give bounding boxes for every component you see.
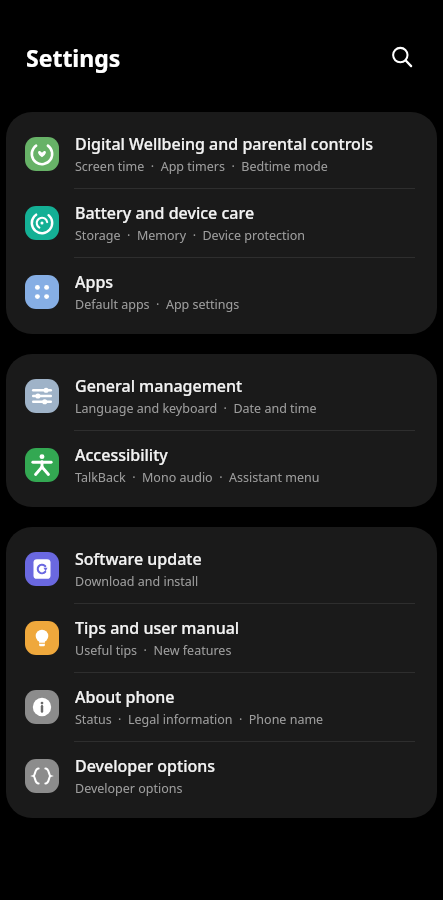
staticText: Software update	[75, 548, 202, 570]
staticText: Default apps · App settings	[75, 296, 240, 313]
button[interactable]: General management	[6, 362, 437, 430]
staticText: General management	[75, 375, 243, 397]
staticText: Digital Wellbeing and parental controls	[75, 133, 373, 155]
staticText: Tips and user manual	[75, 617, 240, 639]
button[interactable]: Search	[380, 35, 424, 79]
button[interactable]: Battery and device care	[6, 189, 437, 257]
staticText: Status · Legal information · Phone name	[75, 711, 324, 728]
staticText: Apps	[75, 271, 114, 293]
staticText: Screen time · App timers · Bedtime mode	[75, 158, 328, 175]
staticText: About phone	[75, 686, 175, 708]
button[interactable]: About phone	[6, 673, 437, 741]
button[interactable]: Apps	[6, 258, 437, 326]
staticText: Accessibility	[75, 444, 168, 466]
button[interactable]: Tips and user manual	[6, 604, 437, 672]
staticText: Useful tips · New features	[75, 642, 232, 659]
staticText: TalkBack · Mono audio · Assistant menu	[75, 469, 320, 486]
staticText: Settings	[26, 42, 121, 73]
staticText: Storage · Memory · Device protection	[75, 227, 306, 244]
staticText: Download and install	[75, 573, 199, 590]
button[interactable]: Software update	[6, 535, 437, 603]
button[interactable]: Accessibility	[6, 431, 437, 499]
staticText: Battery and device care	[75, 202, 255, 224]
button[interactable]: Developer options	[6, 742, 437, 810]
button[interactable]: Digital Wellbeing and parental controls	[6, 120, 437, 188]
staticText: Developer options	[75, 755, 216, 777]
staticText: Language and keyboard · Date and time	[75, 400, 317, 417]
staticText: Developer options	[75, 780, 183, 797]
